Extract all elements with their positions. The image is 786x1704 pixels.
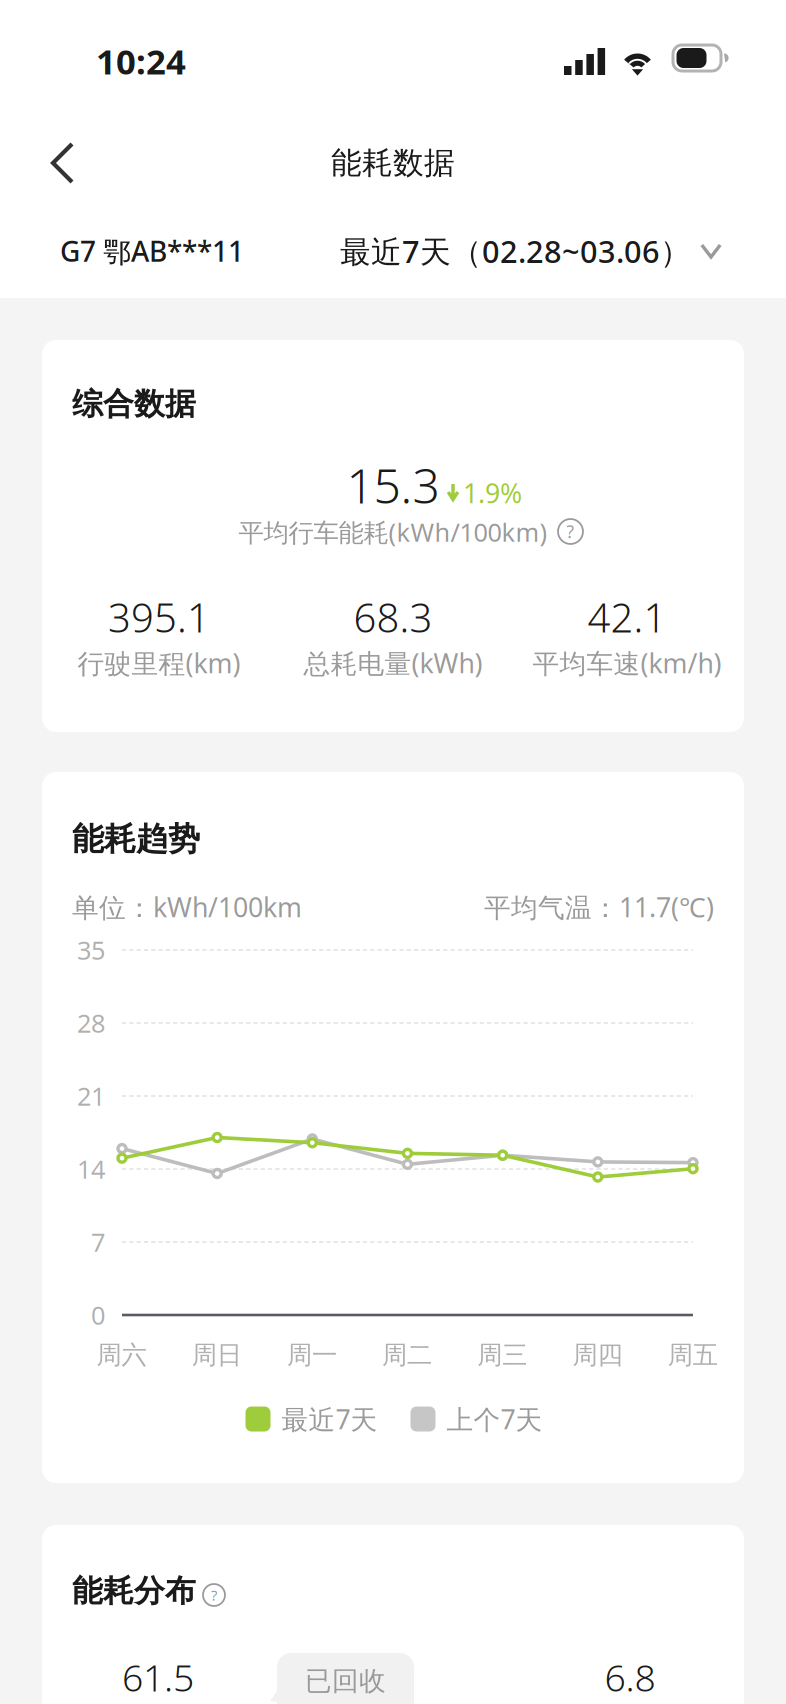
staticText: 已回收 — [305, 1665, 386, 1697]
staticText: 能耗分布 — [72, 1572, 196, 1610]
staticText: 能耗趋势 — [72, 819, 200, 859]
staticText: 395.1 — [108, 590, 210, 643]
staticText: 7 — [91, 1225, 105, 1259]
staticText: 平均行车能耗(kWh/100km) — [238, 515, 547, 549]
staticText: 单位：kWh/100km — [72, 889, 302, 925]
button[interactable]: 关于平均行车能耗 — [552, 513, 589, 550]
staticText: 14 — [77, 1152, 105, 1186]
staticText: 1.9% — [463, 475, 522, 511]
staticText: 42.1 — [587, 590, 666, 643]
staticText: 68.3 — [353, 590, 432, 643]
button[interactable]: Back — [33, 120, 113, 206]
staticText: 周二 — [382, 1339, 432, 1370]
staticText: 综合数据 — [72, 385, 196, 423]
staticText: ? — [566, 520, 574, 543]
staticText: 周六 — [96, 1339, 146, 1370]
staticText: 平均车速(km/h) — [532, 645, 721, 681]
staticText: G7 鄂AB***11 — [60, 232, 244, 270]
staticText: 21 — [77, 1079, 105, 1113]
staticText: 最近7天（02.28~03.06） — [340, 231, 691, 271]
staticText: 35 — [77, 933, 105, 967]
staticText: ? — [211, 1585, 217, 1605]
staticText: 周三 — [477, 1339, 527, 1370]
staticText: 10:24 — [96, 38, 186, 84]
button[interactable]: 关于能耗分布 — [197, 1578, 231, 1612]
staticText: 行驶里程(km) — [77, 645, 240, 681]
staticText: 61.5 — [122, 1652, 194, 1702]
staticText: 最近7天 — [281, 1401, 377, 1437]
staticText: 15.3 — [346, 453, 439, 517]
button[interactable]: 最近7天（02.28~03.06） — [340, 216, 750, 286]
staticText: 0 — [91, 1298, 105, 1332]
staticText: 周日 — [192, 1339, 242, 1370]
staticText: 上个7天 — [446, 1401, 542, 1437]
staticText: 周五 — [668, 1339, 718, 1370]
staticText: 28 — [77, 1006, 105, 1040]
staticText: 6.8 — [604, 1652, 655, 1702]
button[interactable]: G7 鄂AB***11 — [60, 216, 290, 286]
staticText: 能耗数据 — [331, 144, 455, 182]
staticText: 总耗电量(kWh) — [303, 645, 482, 681]
staticText: 平均气温：11.7(℃) — [484, 889, 714, 925]
staticText: 周一 — [287, 1339, 337, 1370]
staticText: 周四 — [572, 1339, 622, 1370]
